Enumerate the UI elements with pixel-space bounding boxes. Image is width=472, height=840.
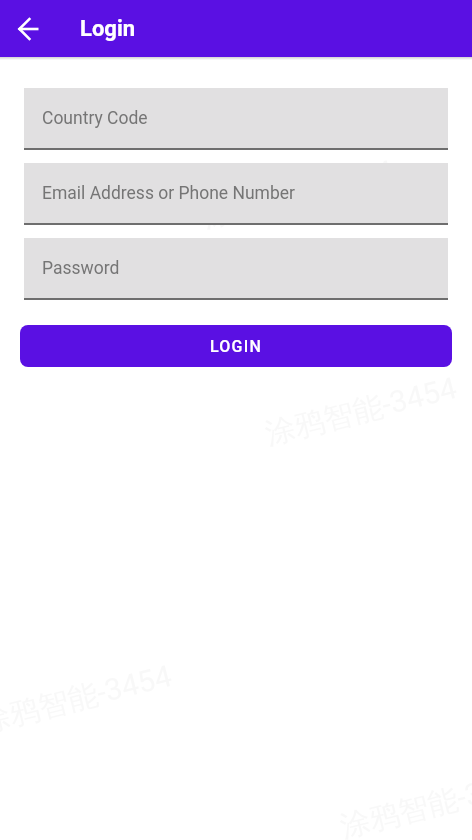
staticText: Password <box>42 258 120 279</box>
staticText: 涂鸦智能-3454 <box>248 0 448 71</box>
button[interactable] <box>5 5 53 53</box>
staticText: 涂鸦智能-3454 <box>198 152 398 236</box>
button[interactable]: Email Address or Phone Number <box>24 163 448 223</box>
staticText: Country Code <box>42 108 148 129</box>
button[interactable]: Country Code <box>24 88 448 148</box>
staticText: Email Address or Phone Number <box>42 183 295 204</box>
button[interactable]: Password <box>24 238 448 298</box>
button[interactable]: LOGIN <box>20 325 452 367</box>
staticText: Login <box>80 16 136 42</box>
staticText: LOGIN <box>210 337 262 356</box>
